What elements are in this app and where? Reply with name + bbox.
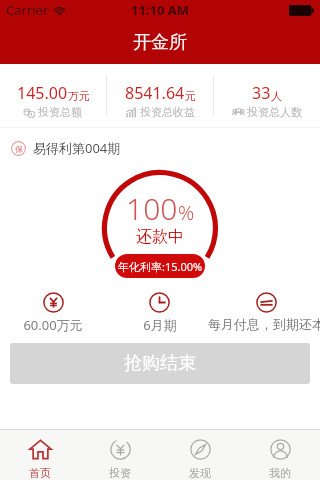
button[interactable]: 145.00: [0, 64, 106, 127]
button[interactable]: 6月期: [106, 292, 213, 332]
button[interactable]: 33: [214, 64, 320, 127]
button[interactable]: 年化利率:15.00%: [115, 254, 205, 278]
staticText: 11:10 AM: [131, 1, 190, 19]
staticText: 145.00: [17, 82, 68, 104]
staticText: 年化利率:15.00%: [118, 259, 203, 274]
staticText: Carrier: [6, 1, 49, 19]
button[interactable]: 抢购结束: [10, 343, 310, 384]
button[interactable]: 首页: [0, 430, 80, 480]
button[interactable]: 60.00万元: [0, 292, 106, 332]
staticText: 元: [185, 89, 196, 103]
staticText: %: [178, 199, 195, 226]
button[interactable]: 投资: [80, 430, 160, 480]
staticText: 首页: [29, 466, 51, 480]
staticText: 人: [271, 89, 282, 103]
staticText: 保: [15, 144, 23, 154]
staticText: 60.00万元: [23, 316, 83, 332]
button[interactable]: 我的: [240, 430, 320, 480]
button[interactable]: 8541.64: [107, 64, 213, 127]
button[interactable]: 保: [11, 134, 320, 162]
staticText: 每月付息，到期还本: [208, 316, 320, 332]
staticText: 抢购结束: [124, 352, 196, 375]
staticText: 发现: [189, 466, 211, 480]
staticText: 易得利第004期: [33, 139, 121, 157]
button[interactable]: 每月付息，到期还本: [213, 292, 320, 332]
staticText: 我的: [269, 466, 291, 480]
staticText: 万元: [68, 89, 90, 103]
staticText: 投资总人数: [247, 105, 302, 119]
staticText: 投资总收益: [140, 105, 195, 119]
staticText: 投资总额: [38, 105, 82, 119]
staticText: 6月期: [143, 316, 177, 332]
staticText: 投资: [109, 466, 131, 480]
button[interactable]: 发现: [160, 430, 240, 480]
staticText: 还款中: [136, 227, 184, 247]
staticText: 开金所: [133, 31, 187, 54]
staticText: 8541.64: [125, 82, 185, 104]
staticText: 100: [126, 188, 178, 229]
staticText: 33: [252, 82, 271, 104]
